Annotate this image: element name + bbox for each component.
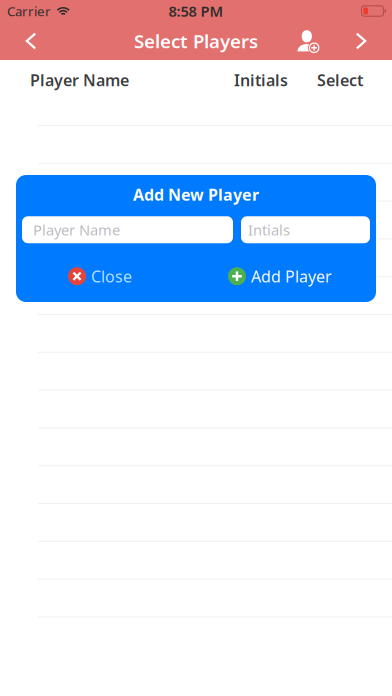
staticText: 8:58 PM — [168, 1, 223, 21]
staticText: Select — [317, 69, 363, 91]
staticText: Carrier — [7, 2, 51, 20]
staticText: Add Player — [251, 266, 332, 287]
staticText: Close — [91, 266, 132, 287]
button[interactable] — [0, 238, 392, 276]
button[interactable]: Add Player — [287, 22, 331, 60]
staticText: Add New Player — [133, 184, 259, 205]
button[interactable]: Back — [9, 22, 53, 60]
button[interactable] — [0, 201, 392, 238]
staticText: Initials — [234, 69, 288, 91]
button[interactable]: Forward — [343, 22, 379, 60]
staticText: Player Name — [33, 220, 120, 239]
button[interactable] — [0, 276, 392, 314]
staticText: Select Players — [134, 29, 258, 53]
button[interactable]: Add Player — [222, 261, 338, 291]
staticText: Player Name — [30, 69, 129, 91]
button[interactable] — [0, 163, 392, 201]
button[interactable]: Close — [62, 261, 138, 291]
staticText: Intials — [248, 220, 290, 239]
